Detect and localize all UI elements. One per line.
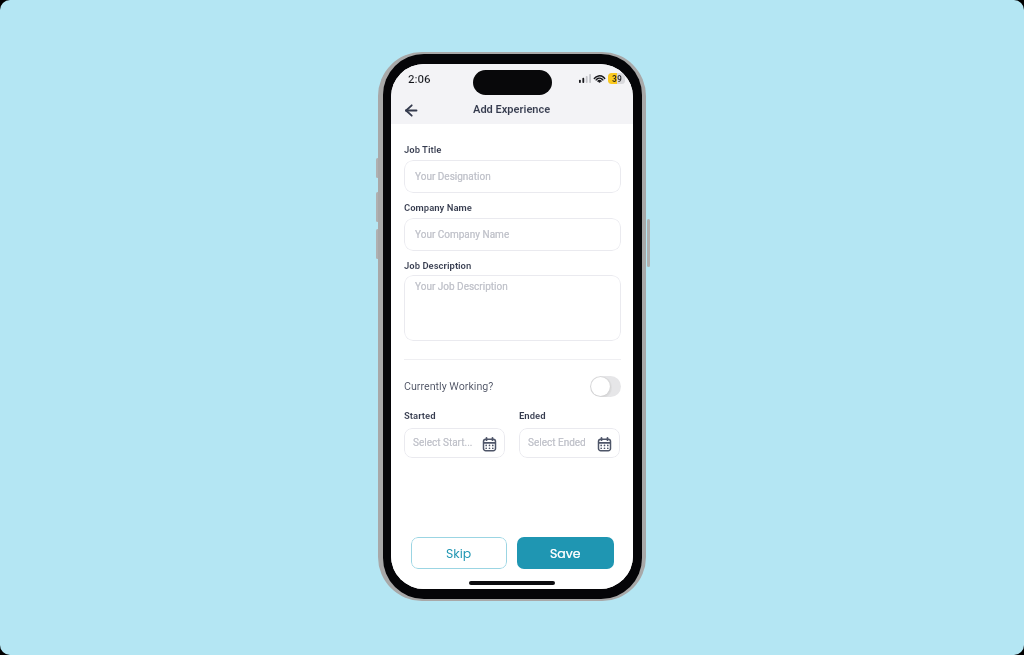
staticText: Select Ended [528, 437, 586, 449]
staticText: Save [550, 545, 581, 562]
staticText: Add Experience [473, 103, 551, 116]
button[interactable]: Save [517, 537, 614, 569]
staticText: Your Designation [415, 171, 491, 183]
staticText: Your Company Name [415, 229, 510, 241]
staticText: Ended [519, 410, 546, 421]
button[interactable]: Your Job Description [404, 275, 621, 341]
button[interactable]: Skip [411, 537, 507, 569]
button[interactable]: Your Designation [404, 160, 621, 193]
staticText: Currently Working? [404, 380, 494, 393]
staticText: Select Start... [413, 437, 473, 449]
button[interactable]: Your Company Name [404, 218, 621, 251]
button[interactable]: Currently working [590, 376, 621, 397]
button[interactable]: Select end date [519, 428, 620, 458]
staticText: Company Name [404, 202, 472, 213]
button[interactable]: Back [398, 97, 424, 123]
staticText: Job Title [404, 144, 442, 155]
staticText: Job Description [404, 260, 472, 271]
staticText: Your Job Description [415, 281, 508, 293]
staticText: 2:06 [408, 72, 431, 85]
staticText: Started [404, 410, 436, 421]
button[interactable]: Select start date [404, 428, 505, 458]
staticText: 39 [612, 74, 622, 84]
staticText: Skip [446, 545, 472, 562]
